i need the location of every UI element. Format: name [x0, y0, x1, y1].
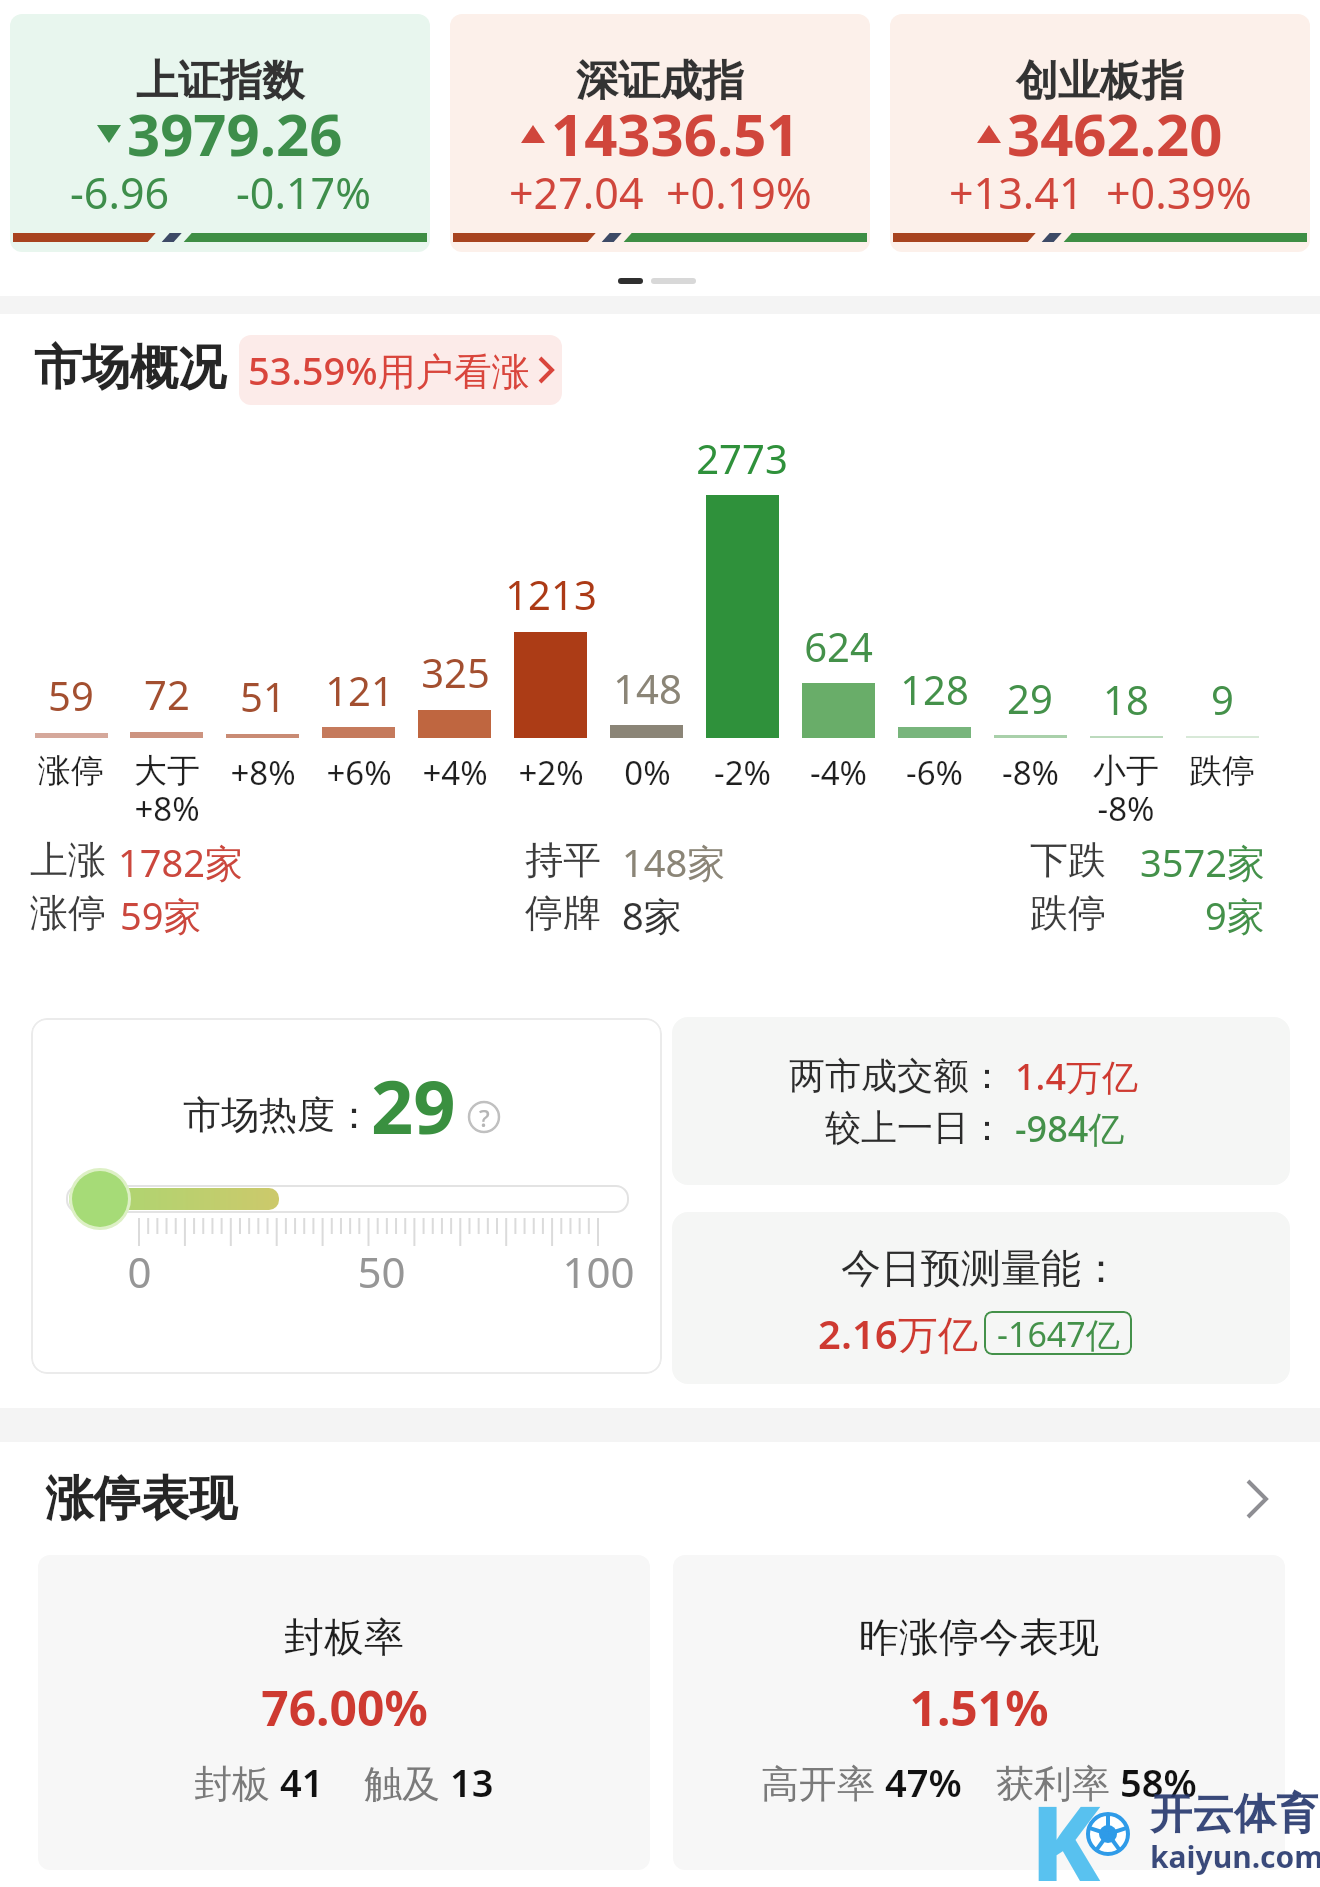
staticText: 29	[371, 1055, 456, 1156]
button[interactable]: 涨停表现	[0, 1442, 1320, 1555]
staticText: 59	[48, 668, 94, 722]
staticText: 停牌	[525, 889, 601, 937]
staticText: 1.51%	[909, 1675, 1049, 1740]
staticText: 9	[1211, 672, 1234, 726]
staticText: 市场热度：	[183, 1091, 373, 1139]
staticText: ?	[479, 1101, 490, 1134]
staticText: +2%	[518, 750, 584, 795]
staticText: 325	[421, 645, 490, 699]
staticText: +0.39%	[1106, 163, 1252, 222]
staticText: 3462.20	[1007, 94, 1223, 173]
staticText: 封板	[194, 1756, 280, 1808]
staticText: 51	[240, 669, 286, 723]
staticText: -4%	[810, 750, 867, 795]
staticText: -0.17%	[236, 163, 371, 222]
button[interactable]: 深证成指	[450, 14, 870, 252]
staticText: 今日预测量能：	[841, 1243, 1121, 1293]
button[interactable]: 昨涨停今表现	[673, 1555, 1285, 1870]
staticText: 涨停	[30, 889, 106, 937]
staticText: +4%	[422, 750, 488, 795]
staticText: 2.16万亿	[818, 1306, 978, 1361]
staticText: 624	[804, 619, 873, 673]
staticText: 18	[1103, 672, 1149, 726]
staticText: 下跌	[1030, 836, 1106, 884]
staticText: 涨停表现	[45, 1469, 237, 1529]
button[interactable]: 上证指数	[10, 14, 430, 252]
staticText: 小于 -8%	[1093, 750, 1159, 830]
staticText: 1.4万亿	[1015, 1052, 1138, 1101]
staticText: 获利率	[996, 1756, 1120, 1808]
staticText: 大于 +8%	[134, 750, 200, 830]
staticText: 29	[1007, 671, 1053, 725]
staticText: 0%	[624, 750, 671, 795]
staticText: 58%	[1120, 1756, 1197, 1808]
staticText: 8家	[622, 889, 682, 941]
staticText: 3979.26	[127, 94, 343, 173]
staticText: 创业板指	[1016, 55, 1184, 108]
staticText: 封板率	[284, 1612, 404, 1662]
staticText: 2773	[696, 431, 788, 485]
staticText: 高开率	[761, 1756, 885, 1808]
staticText: 59家	[120, 889, 202, 941]
staticText: 两市成交额：	[789, 1053, 1005, 1098]
staticText: -8%	[1002, 750, 1059, 795]
button[interactable]: 53.59%用户看涨	[239, 335, 562, 405]
staticText: 9家	[1205, 889, 1265, 941]
staticText: 47%	[885, 1756, 962, 1808]
button[interactable]: 创业板指	[890, 14, 1310, 252]
button[interactable]: 封板率	[38, 1555, 650, 1870]
staticText: -1647亿	[997, 1311, 1120, 1355]
staticText: 触及	[364, 1756, 450, 1808]
staticText: 跌停	[1189, 750, 1255, 792]
staticText: +27.04	[509, 163, 644, 222]
staticText: kaiyun.com	[1150, 1836, 1320, 1877]
staticText: 13	[450, 1756, 494, 1808]
staticText: 148家	[622, 836, 726, 888]
staticText: 0	[127, 1243, 152, 1300]
staticText: 昨涨停今表现	[859, 1612, 1099, 1662]
staticText: 3572家	[1140, 836, 1265, 888]
staticText: 76.00%	[261, 1675, 428, 1740]
staticText: 72	[144, 667, 190, 721]
staticText: K	[1030, 1770, 1101, 1887]
staticText: 上证指数	[136, 55, 304, 108]
staticText: +13.41	[949, 163, 1084, 222]
staticText: 开云体育	[1150, 1788, 1318, 1841]
staticText: 100	[562, 1243, 635, 1300]
staticText: 较上一日：	[825, 1105, 1005, 1150]
staticText: -6%	[906, 750, 963, 795]
staticText: 1213	[505, 567, 597, 621]
staticText: 深证成指	[576, 55, 744, 108]
staticText: 持平	[525, 836, 601, 884]
staticText: 涨停	[38, 750, 104, 792]
staticText: -984亿	[1015, 1104, 1125, 1153]
staticText: +0.19%	[666, 163, 812, 222]
staticText: 跌停	[1030, 889, 1106, 937]
staticText: -2%	[714, 750, 771, 795]
staticText: 148	[613, 661, 682, 715]
staticText: 50	[357, 1243, 406, 1300]
staticText: 121	[325, 663, 394, 717]
staticText: 41	[280, 1756, 324, 1808]
staticText: 上涨	[30, 836, 106, 884]
staticText: +6%	[326, 750, 392, 795]
staticText: -6.96	[70, 163, 170, 222]
staticText: 14336.51	[551, 94, 800, 173]
staticText: 53.59%用户看涨	[248, 344, 530, 396]
staticText: 128	[900, 662, 969, 716]
staticText: +8%	[230, 750, 296, 795]
staticText: 1782家	[118, 836, 243, 888]
staticText: 市场概况	[34, 338, 226, 398]
